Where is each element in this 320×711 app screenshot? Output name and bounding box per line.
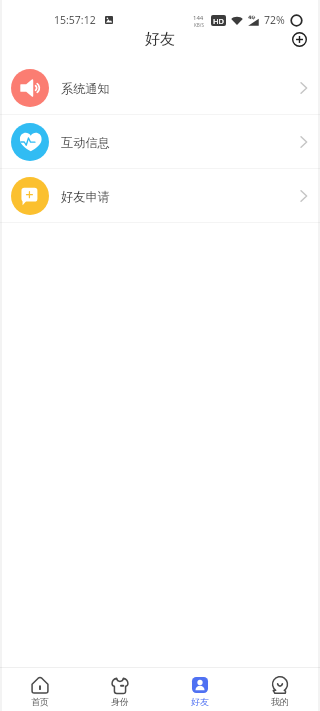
staticText: 系统通知 bbox=[61, 81, 110, 96]
staticText: 身份 bbox=[111, 696, 129, 707]
button[interactable]: 好友 bbox=[160, 668, 240, 711]
staticText: 144 bbox=[193, 14, 204, 22]
staticText: 首页 bbox=[31, 696, 49, 707]
staticText: KB/S bbox=[194, 22, 204, 28]
staticText: 互动信息 bbox=[61, 135, 110, 150]
staticText: 好友 bbox=[145, 30, 175, 49]
button[interactable]: 身份 bbox=[80, 668, 160, 711]
button[interactable]: 互动信息 bbox=[0, 115, 320, 168]
staticText: 我的 bbox=[271, 696, 289, 707]
staticText: 15:57:12 bbox=[54, 13, 96, 27]
button[interactable]: 好友申请 bbox=[0, 169, 320, 222]
staticText: 好友 bbox=[191, 696, 209, 707]
button[interactable]: Add friend bbox=[287, 27, 311, 51]
button[interactable]: 首页 bbox=[0, 668, 80, 711]
staticText: 好友申请 bbox=[61, 189, 110, 204]
staticText: HD bbox=[213, 16, 225, 26]
staticText: 72% bbox=[264, 13, 285, 27]
button[interactable]: 系统通知 bbox=[0, 61, 320, 114]
button[interactable]: 我的 bbox=[240, 668, 320, 711]
